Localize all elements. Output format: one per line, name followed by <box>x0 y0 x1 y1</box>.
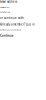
staticText: Don't have an account? Sign up <box>0 29 21 31</box>
staticText: Continue <box>0 34 14 37</box>
staticText: Already a member? Log in <box>0 23 35 26</box>
staticText: Email address <box>0 0 17 3</box>
staticText: Email address <box>0 6 10 8</box>
staticText: Remember me <box>0 11 10 13</box>
staticText: or continue with <box>0 16 24 20</box>
